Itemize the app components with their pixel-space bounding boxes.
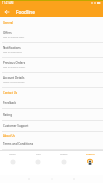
staticText: Customer Support [3,124,29,128]
staticText: view all notifications [3,51,22,54]
staticText: Home [9,153,16,156]
staticText: Terms and Conditions [3,142,34,146]
button[interactable]: Back [2,7,11,16]
button[interactable]: Rating [0,109,103,121]
button[interactable]: Account Details [0,73,103,88]
staticText: General [3,21,14,25]
staticText: Orders [60,153,68,156]
staticText: Cart [36,153,41,156]
button[interactable]: Previous Orders [0,58,103,73]
staticText: Feedback [3,101,17,105]
staticText: Support [86,153,95,156]
button[interactable]: Orders [51,150,77,175]
staticText: 11:21 AM [2,1,14,5]
staticText: About Us [3,134,15,138]
staticText: Previous Orders [3,61,26,65]
button[interactable]: Cart [25,150,51,175]
button[interactable]: Offers [0,28,103,43]
staticText: Modify Account Details [3,81,25,84]
button[interactable]: Feedback [0,98,103,109]
staticText: view all ongoing offers [3,36,25,39]
staticText: Foodline [16,9,35,15]
button[interactable]: Home [0,150,25,175]
staticText: Account Details [3,76,25,80]
button[interactable]: Notifications [0,43,103,58]
staticText: Offers [3,31,12,35]
button[interactable]: Customer Support [0,121,103,132]
staticText: Notifications [3,46,21,50]
button[interactable]: Terms and Conditions [0,139,103,150]
staticText: view all previous orders [3,66,26,69]
button[interactable]: Support [77,150,103,175]
staticText: Rating [3,113,12,117]
staticText: Contact Us [3,91,17,95]
